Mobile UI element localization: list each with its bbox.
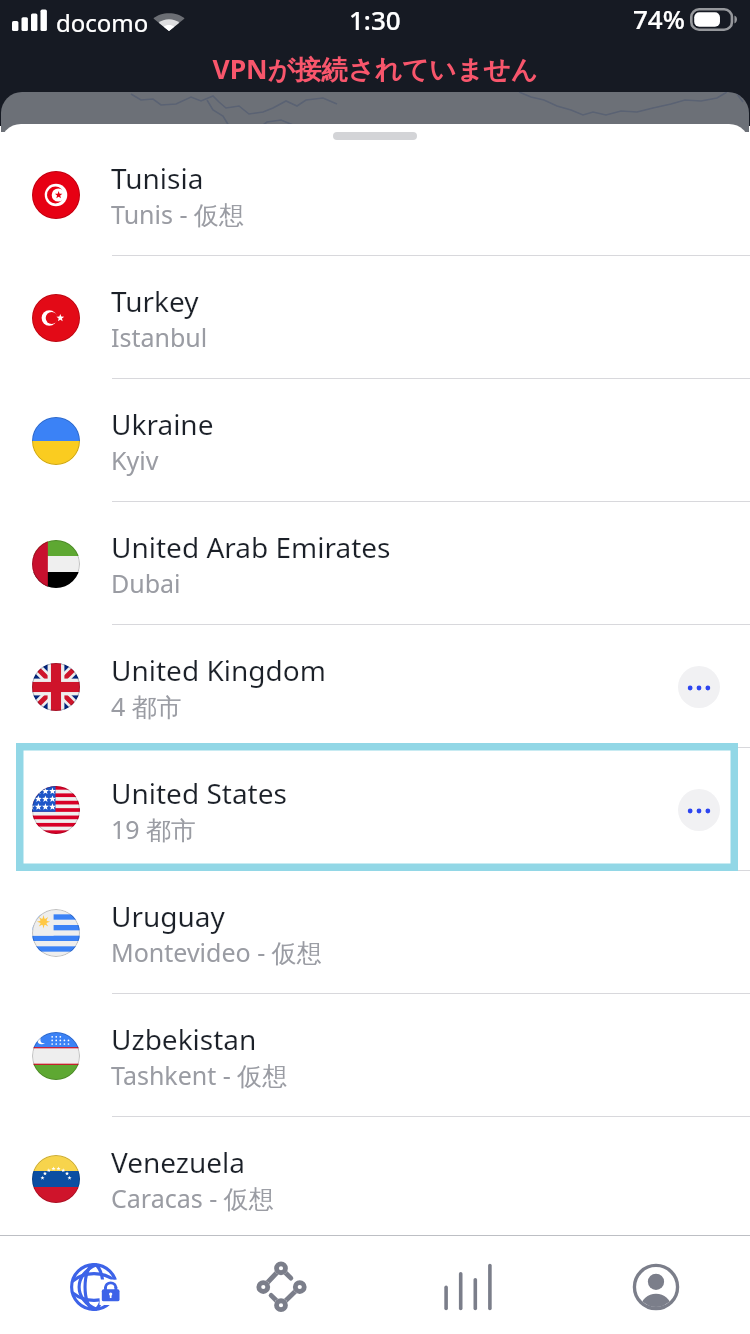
staticText: 1:30 [349, 2, 401, 37]
staticText: Kyiv [111, 443, 159, 477]
staticText: 19 都市 [111, 812, 197, 846]
staticText: Istanbul [111, 320, 208, 354]
button[interactable]: United Arab Emirates [0, 502, 750, 625]
button[interactable]: United Kingdom [0, 625, 750, 748]
button[interactable]: More options [678, 789, 720, 831]
button[interactable]: Turkey [0, 256, 750, 379]
button[interactable]: Tunisia [0, 133, 750, 256]
staticText: United Kingdom [111, 651, 326, 689]
staticText: United Arab Emirates [111, 528, 391, 566]
button[interactable]: VPN [0, 1236, 187, 1334]
staticText: Tashkent - 仮想 [111, 1058, 288, 1092]
staticText: Tunis - 仮想 [111, 197, 245, 231]
staticText: Caracas - 仮想 [111, 1181, 274, 1215]
staticText: Uruguay [111, 897, 225, 935]
button[interactable]: Ukraine [0, 379, 750, 502]
button[interactable]: Network [187, 1236, 374, 1334]
staticText: Venezuela [111, 1143, 246, 1181]
button[interactable]: More options [678, 666, 720, 708]
staticText: Uzbekistan [111, 1020, 257, 1058]
staticText: VPNが接続されていません [212, 51, 538, 87]
button[interactable]: Uzbekistan [0, 994, 750, 1117]
button[interactable]: Statistics [374, 1236, 562, 1334]
staticText: United States [111, 774, 287, 812]
staticText: 74% [633, 1, 685, 36]
button[interactable]: Venezuela [0, 1117, 750, 1240]
staticText: Montevideo - 仮想 [111, 935, 322, 969]
staticText: docomo [56, 6, 149, 39]
staticText: Dubai [111, 566, 181, 600]
staticText: Turkey [111, 282, 199, 320]
button[interactable]: United States [0, 748, 750, 871]
staticText: Ukraine [111, 405, 214, 443]
staticText: Tunisia [111, 159, 204, 197]
button[interactable]: Account [562, 1236, 750, 1334]
button[interactable]: Uruguay [0, 871, 750, 994]
staticText: 4 都市 [111, 689, 182, 723]
